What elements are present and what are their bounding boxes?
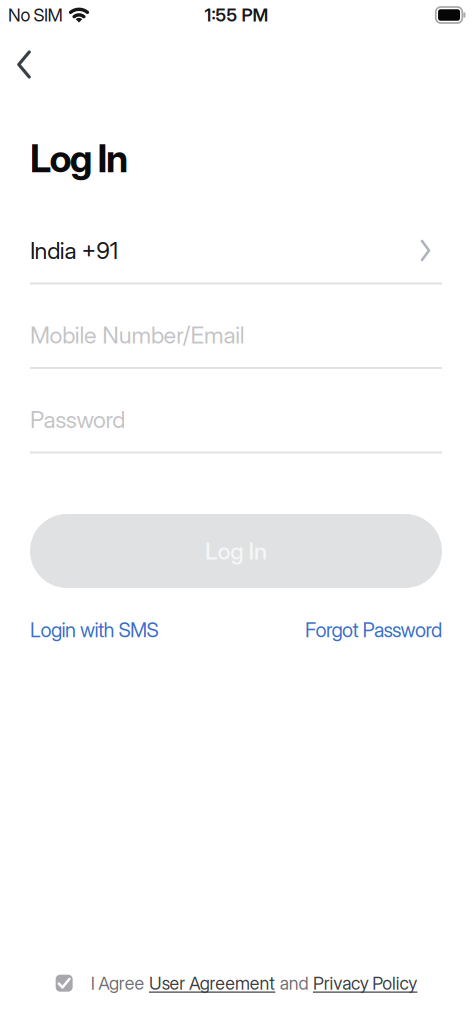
staticText: Log In xyxy=(205,537,267,565)
staticText: Forgot Password xyxy=(305,618,442,642)
staticText: Login with SMS xyxy=(30,618,158,642)
button[interactable]: Log In xyxy=(30,514,442,588)
button[interactable]: I Agree xyxy=(56,975,73,992)
staticText: India +91 xyxy=(30,236,118,265)
button[interactable]: User Agreement xyxy=(149,972,275,994)
button[interactable]: Password xyxy=(30,387,442,453)
button[interactable]: Back xyxy=(2,42,46,86)
button[interactable]: Login with SMS xyxy=(30,618,158,642)
staticText: Privacy Policy xyxy=(313,972,417,994)
staticText: User Agreement xyxy=(149,972,275,994)
staticText: Password xyxy=(30,405,125,434)
button[interactable]: Mobile Number/Email xyxy=(30,303,442,369)
button[interactable]: Privacy Policy xyxy=(313,972,417,994)
staticText: Mobile Number/Email xyxy=(30,321,245,349)
staticText: and xyxy=(280,972,308,994)
button[interactable]: India +91 xyxy=(30,218,442,284)
staticText: No SIM xyxy=(8,4,62,26)
staticText: I Agree xyxy=(91,972,144,994)
button[interactable]: Forgot Password xyxy=(305,618,442,642)
staticText: Log In xyxy=(30,135,128,181)
staticText: 1:55 PM xyxy=(204,4,268,26)
